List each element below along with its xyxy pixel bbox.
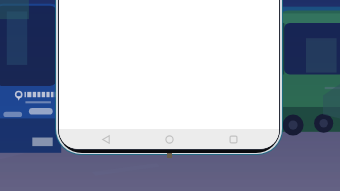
button[interactable]: Back (89, 129, 123, 149)
button[interactable]: Home (152, 129, 186, 149)
button[interactable]: Recent apps (216, 129, 250, 149)
